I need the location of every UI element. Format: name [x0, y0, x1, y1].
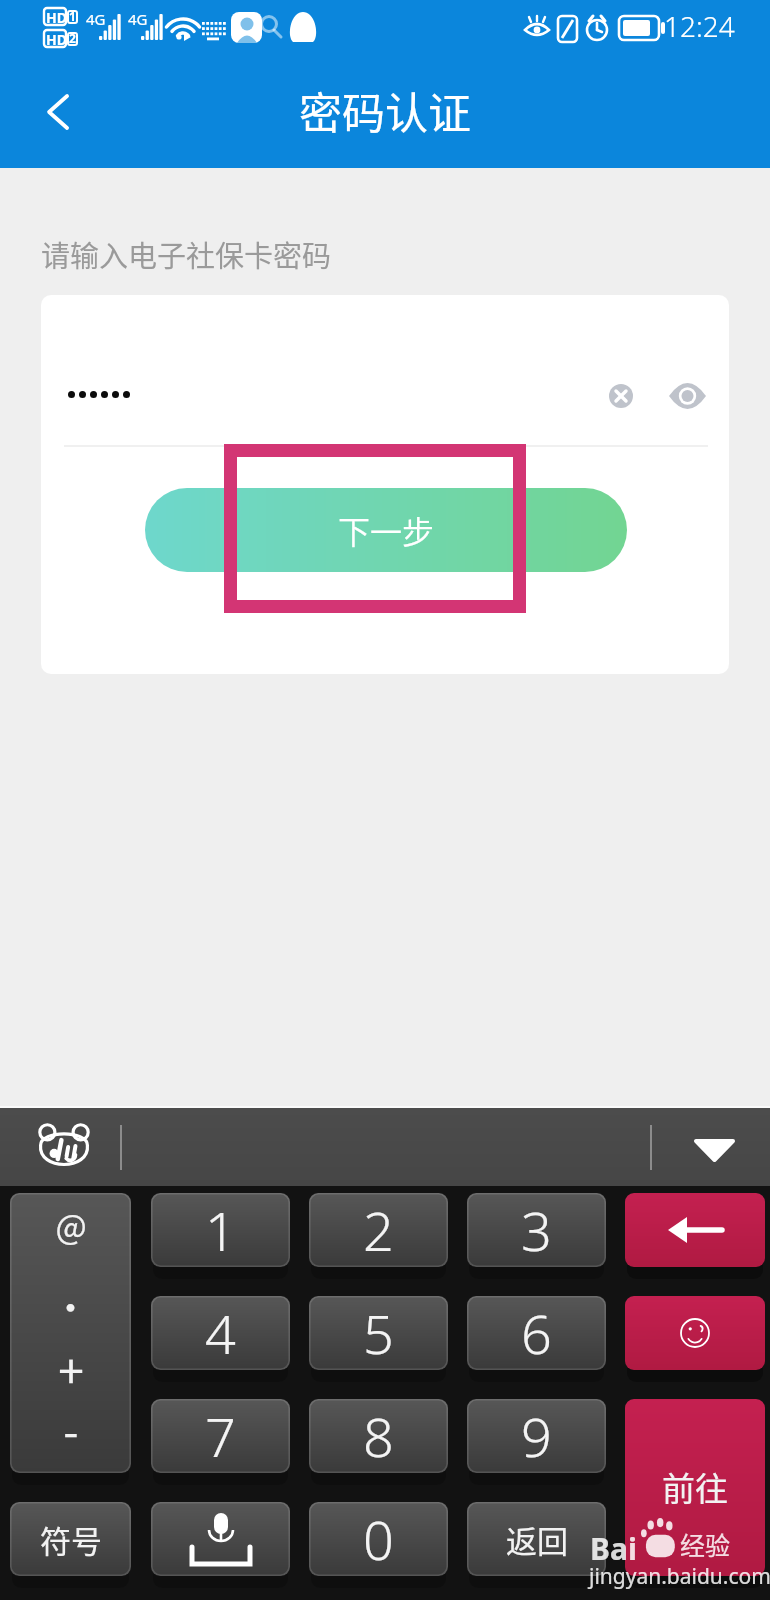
staticText: 12:24: [664, 7, 735, 45]
button[interactable]: Back: [0, 56, 112, 168]
staticText: 前往: [662, 1463, 728, 1511]
button[interactable]: 2: [309, 1193, 448, 1267]
button[interactable]: 9: [467, 1399, 606, 1473]
staticText: 4G: [86, 9, 106, 29]
staticText: +: [58, 1335, 84, 1387]
button[interactable]: Clear text: [597, 372, 645, 420]
staticText: -: [63, 1397, 79, 1449]
button[interactable]: Hide keyboard: [684, 1120, 744, 1180]
button[interactable]: 0: [309, 1502, 448, 1576]
staticText: 符号: [40, 1517, 102, 1562]
staticText: jingyan.baidu.com: [589, 1562, 770, 1591]
button[interactable]: 6: [467, 1296, 606, 1370]
staticText: 密码认证: [299, 79, 471, 141]
button[interactable]: 1: [151, 1193, 290, 1267]
button[interactable]: Backspace: [625, 1193, 765, 1267]
button[interactable]: 符号: [10, 1502, 131, 1576]
button[interactable]: Show password: [663, 372, 711, 420]
staticText: 3: [521, 1193, 552, 1267]
button[interactable]: 前往: [625, 1399, 765, 1576]
button[interactable]: [151, 1502, 290, 1576]
button[interactable]: @: [10, 1193, 131, 1473]
staticText: ·: [52, 1280, 89, 1332]
button[interactable]: 3: [467, 1193, 606, 1267]
staticText: 1: [69, 8, 76, 24]
staticText: 6: [521, 1296, 552, 1370]
staticText: 返回: [506, 1517, 568, 1562]
button[interactable]: 8: [309, 1399, 448, 1473]
staticText: 1: [205, 1193, 236, 1267]
button[interactable]: 5: [309, 1296, 448, 1370]
staticText: 4: [205, 1296, 236, 1370]
staticText: HD: [46, 30, 67, 49]
staticText: 0: [363, 1502, 394, 1576]
button[interactable]: 返回: [467, 1502, 606, 1576]
button[interactable]: Emoji: [625, 1296, 765, 1370]
staticText: 7: [205, 1399, 236, 1473]
button[interactable]: 4: [151, 1296, 290, 1370]
staticText: 下一步: [338, 507, 435, 553]
staticText: 5: [363, 1296, 394, 1370]
staticText: @: [55, 1201, 87, 1249]
staticText: HD: [46, 8, 67, 27]
staticText: 2: [363, 1193, 394, 1267]
staticText: 4G: [128, 9, 148, 29]
staticText: 经验: [680, 1526, 731, 1562]
button[interactable]: Baidu input settings: [38, 1124, 90, 1170]
staticText: 9: [521, 1399, 552, 1473]
staticText: 2: [69, 30, 76, 46]
button[interactable]: 下一步: [145, 488, 627, 572]
staticText: Bai: [590, 1528, 637, 1569]
staticText: 请输入电子社保卡密码: [41, 233, 332, 275]
staticText: 8: [363, 1399, 394, 1473]
button[interactable]: 7: [151, 1399, 290, 1473]
